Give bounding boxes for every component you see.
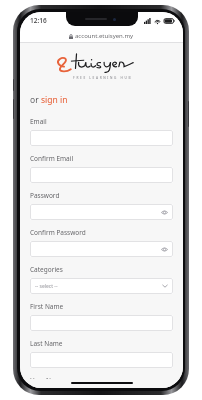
button[interactable] xyxy=(30,352,173,368)
button[interactable]: Show password xyxy=(30,204,173,220)
staticText: sign in xyxy=(41,94,68,106)
staticText: Confirm Password xyxy=(30,228,86,237)
staticText: Last Name xyxy=(30,339,63,348)
button[interactable]: -- select -- xyxy=(30,278,173,294)
other: Open dropdown xyxy=(162,283,168,289)
staticText: First Name xyxy=(30,302,64,311)
button[interactable]: sign in xyxy=(41,94,68,106)
staticText: Password xyxy=(30,191,60,200)
staticText: Categories xyxy=(30,265,63,274)
button[interactable]: Show password xyxy=(30,241,173,257)
other: Show password xyxy=(161,209,168,216)
staticText: -- select -- xyxy=(35,283,58,290)
staticText: User Name xyxy=(30,376,65,379)
staticText: F R E E L E A R N I N G H U B xyxy=(73,76,131,80)
other: Show password xyxy=(161,246,168,253)
staticText: Confirm Email xyxy=(30,154,74,163)
staticText: or xyxy=(30,94,41,106)
button[interactable]: account.etuisyen.my xyxy=(20,29,183,42)
button[interactable] xyxy=(30,315,173,331)
staticText: 12:16 xyxy=(30,16,47,25)
staticText: Email xyxy=(30,117,47,126)
button[interactable] xyxy=(30,167,173,183)
staticText: account.etuisyen.my xyxy=(75,32,134,40)
button[interactable] xyxy=(30,130,173,146)
